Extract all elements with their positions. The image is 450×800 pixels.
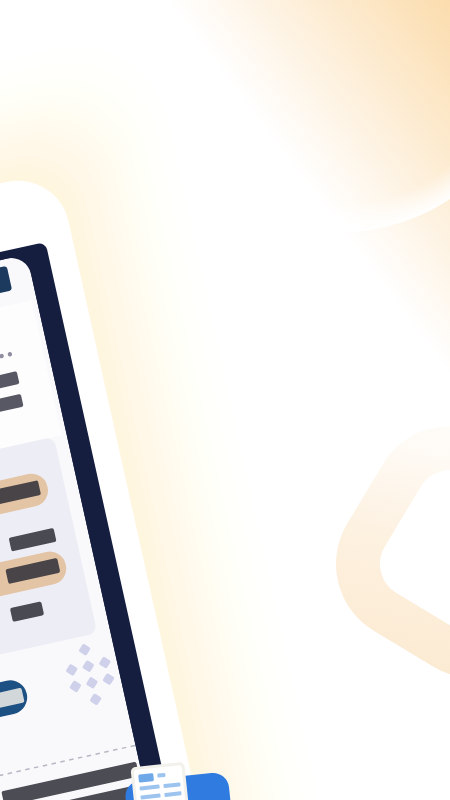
button[interactable]: App promotional screen: [0, 0, 450, 800]
